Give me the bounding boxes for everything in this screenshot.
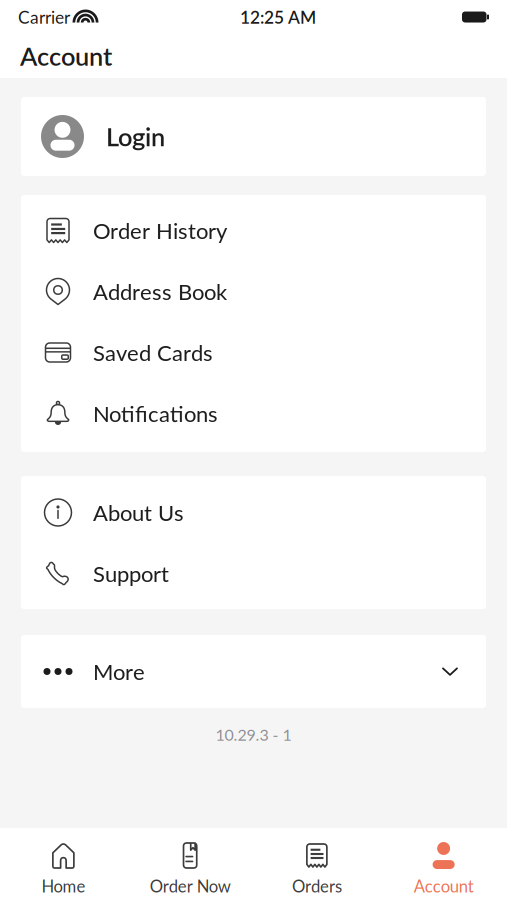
- staticText: About Us: [93, 499, 184, 526]
- staticText: Address Book: [93, 278, 227, 305]
- button[interactable]: Home: [0, 828, 127, 900]
- staticText: Home: [41, 876, 85, 896]
- staticText: More: [93, 658, 145, 685]
- button[interactable]: Order Now: [127, 828, 254, 900]
- button[interactable]: Account: [380, 828, 507, 900]
- staticText: Order History: [93, 217, 227, 244]
- button[interactable]: Address Book: [21, 261, 486, 322]
- staticText: Carrier: [18, 7, 70, 27]
- button[interactable]: Saved Cards: [21, 322, 486, 383]
- button[interactable]: Notifications: [21, 383, 486, 444]
- staticText: Account: [414, 876, 474, 896]
- staticText: 10.29.3 - 1: [215, 725, 291, 744]
- staticText: Saved Cards: [93, 339, 213, 366]
- button[interactable]: Login: [21, 97, 486, 176]
- button[interactable]: Orders: [253, 828, 380, 900]
- button[interactable]: About Us: [21, 482, 486, 543]
- staticText: Support: [93, 560, 169, 587]
- button[interactable]: Support: [21, 543, 486, 604]
- staticText: Login: [106, 121, 165, 152]
- staticText: Account: [20, 41, 112, 71]
- button[interactable]: More: [21, 635, 486, 708]
- staticText: 12:25 AM: [240, 7, 316, 27]
- staticText: Orders: [292, 876, 342, 896]
- staticText: Order Now: [150, 876, 231, 896]
- staticText: Notifications: [93, 400, 218, 427]
- button[interactable]: Order History: [21, 200, 486, 261]
